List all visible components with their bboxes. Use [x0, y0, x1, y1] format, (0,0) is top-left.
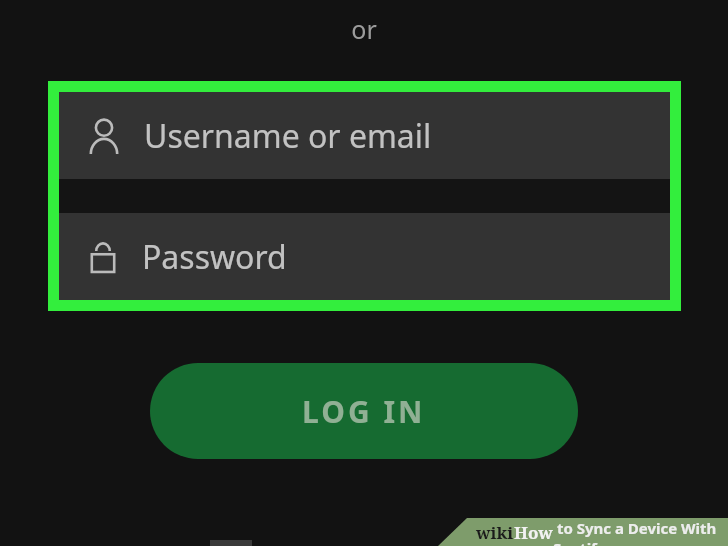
staticText: wiki: [476, 521, 514, 544]
staticText: or: [0, 12, 728, 46]
button[interactable]: LOG IN: [150, 363, 578, 459]
staticText: to Sync a Device With Spotify: [553, 518, 728, 546]
other: Password: [89, 240, 117, 274]
staticText: LOG IN: [302, 391, 426, 432]
button[interactable]: Password: [59, 213, 670, 300]
other: Username: [89, 118, 119, 154]
staticText: How: [514, 521, 553, 544]
button[interactable]: Username: [59, 92, 670, 179]
staticText: Username or email: [144, 114, 432, 158]
staticText: Password: [142, 235, 287, 279]
